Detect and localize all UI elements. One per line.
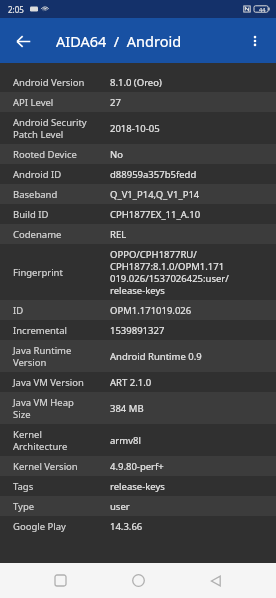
button[interactable]: Kernel Architecture <box>0 424 276 456</box>
button[interactable]: Java Runtime Version <box>0 340 276 372</box>
staticText: ART 2.1.0 <box>110 376 152 389</box>
staticText: Android Runtime 0.9 <box>110 350 202 363</box>
staticText: Android ID <box>13 168 107 181</box>
button[interactable]: Recents <box>42 563 78 598</box>
staticText: REL <box>110 228 127 241</box>
button[interactable]: Java VM Heap Size <box>0 392 276 424</box>
staticText: Java VM Heap Size <box>13 396 107 421</box>
button[interactable]: Java VM Version <box>0 372 276 392</box>
button[interactable]: More options <box>238 24 272 58</box>
staticText: release-keys <box>110 480 165 493</box>
staticText: 2018-10-05 <box>110 122 160 135</box>
staticText: user <box>110 500 130 513</box>
staticText: CPH1877EX_11_A.10 <box>110 208 201 221</box>
button[interactable]: API Level <box>0 92 276 112</box>
button[interactable]: Incremental <box>0 320 276 340</box>
staticText: 1539891327 <box>110 324 165 337</box>
staticText: Android Version <box>13 76 107 89</box>
staticText: Incremental <box>13 324 107 337</box>
staticText: 4.9.80-perf+ <box>110 460 164 473</box>
staticText: 27 <box>110 96 121 109</box>
button[interactable]: Rooted Device <box>0 144 276 164</box>
button[interactable]: Build ID <box>0 204 276 224</box>
staticText: Tags <box>13 480 107 493</box>
staticText: 384 MB <box>110 402 144 415</box>
staticText: Fingerprint <box>13 266 107 279</box>
staticText: Q_V1_P14,Q_V1_P14 <box>110 188 200 201</box>
button[interactable]: Android Security Patch Level <box>0 112 276 144</box>
staticText: OPM1.171019.026 <box>110 304 192 317</box>
staticText: Kernel Version <box>13 460 107 473</box>
staticText: ID <box>13 304 107 317</box>
staticText: Type <box>13 500 107 513</box>
staticText: Baseband <box>13 188 107 201</box>
staticText: 2:05 <box>8 4 24 15</box>
staticText: Google Play <box>13 520 107 533</box>
button[interactable]: Home <box>120 563 156 598</box>
staticText: API Level <box>13 96 107 109</box>
staticText: Android Security Patch Level <box>13 116 107 141</box>
button[interactable]: Android ID <box>0 164 276 184</box>
staticText: Kernel Architecture <box>13 428 107 453</box>
button[interactable]: ID <box>0 300 276 320</box>
staticText: Java Runtime Version <box>13 344 107 369</box>
button[interactable]: Baseband <box>0 184 276 204</box>
staticText: Codename <box>13 228 107 241</box>
staticText: 14.3.66 <box>110 520 143 533</box>
button[interactable]: Back <box>198 563 234 598</box>
button[interactable]: Tags <box>0 476 276 496</box>
staticText: OPPO/CPH1877RU/ CPH1877:8.1.0/OPM1.171 0… <box>110 248 229 297</box>
staticText: Rooted Device <box>13 148 107 161</box>
staticText: Build ID <box>13 208 107 221</box>
button[interactable]: Android Version <box>0 72 276 92</box>
staticText: No <box>110 148 123 161</box>
button[interactable]: Back <box>6 24 40 58</box>
staticText: armv8l <box>110 434 141 447</box>
button[interactable]: Type <box>0 496 276 516</box>
staticText: Java VM Version <box>13 376 107 389</box>
staticText: 44 <box>259 6 266 13</box>
staticText: d88959a357b5fedd <box>110 168 197 181</box>
button[interactable]: Kernel Version <box>0 456 276 476</box>
staticText: 8.1.0 (Oreo) <box>110 76 162 89</box>
button[interactable]: Fingerprint <box>0 244 276 300</box>
staticText: AIDA64 / Android <box>56 31 182 51</box>
button[interactable]: Google Play <box>0 516 276 536</box>
button[interactable]: Codename <box>0 224 276 244</box>
